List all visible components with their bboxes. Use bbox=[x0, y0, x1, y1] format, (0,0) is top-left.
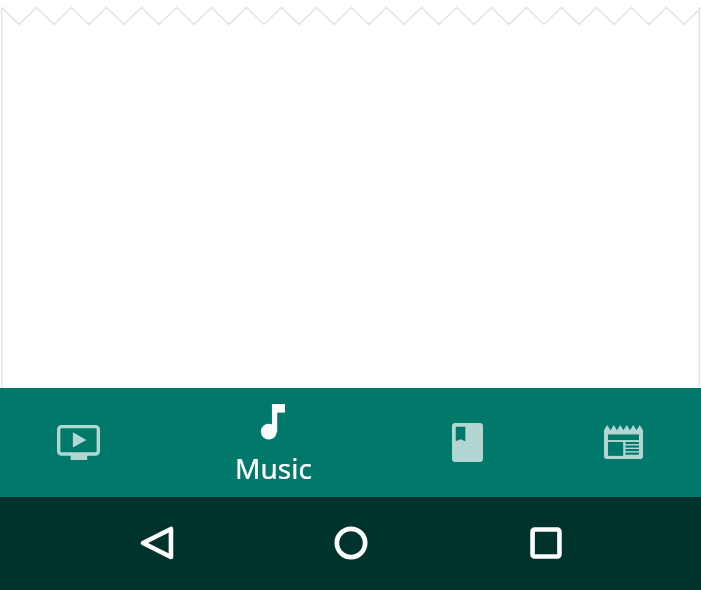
button[interactable]: Home bbox=[324, 516, 378, 570]
button[interactable]: Movies & TV bbox=[0, 388, 156, 497]
button[interactable]: Back bbox=[130, 516, 184, 570]
staticText: Music bbox=[235, 449, 312, 487]
button[interactable]: Music bbox=[156, 388, 390, 497]
button[interactable]: Newsstand bbox=[545, 388, 701, 497]
button[interactable]: Recent apps bbox=[519, 516, 573, 570]
button[interactable]: Books bbox=[390, 388, 545, 497]
